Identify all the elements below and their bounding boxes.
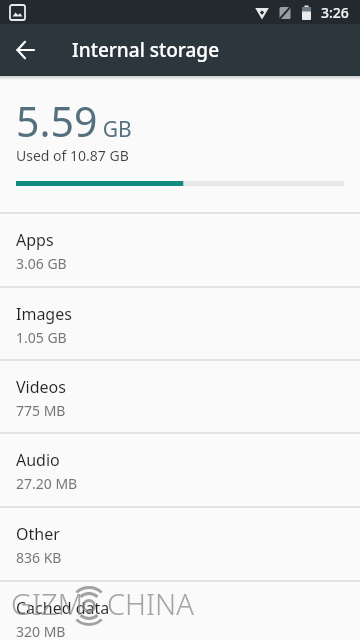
staticText: 27.20 MB (16, 474, 78, 493)
staticText: GIZM (11, 584, 83, 623)
staticText: Apps (16, 229, 54, 251)
staticText: Audio (16, 449, 60, 471)
button[interactable] (0, 24, 52, 76)
button[interactable]: Videos (0, 359, 360, 432)
staticText: Cached data (16, 597, 110, 619)
staticText: Used of 10.87 GB (16, 146, 129, 165)
staticText: 836 KB (16, 548, 62, 567)
button[interactable]: Other (0, 506, 360, 580)
button[interactable]: Apps (0, 212, 360, 286)
staticText: Other (16, 523, 60, 545)
staticText: Videos (16, 376, 66, 398)
staticText: 775 MB (16, 401, 66, 420)
staticText: 5.59 GB (16, 93, 132, 149)
button[interactable]: Audio (0, 432, 360, 506)
staticText: Images (16, 303, 72, 325)
staticText: 1.05 GB (16, 328, 67, 347)
button[interactable]: Cached data (0, 580, 360, 640)
staticText: Internal storage (72, 37, 220, 63)
staticText: 3.06 GB (16, 254, 67, 273)
staticText: 3:26 (321, 3, 349, 22)
staticText: 320 MB (16, 622, 66, 640)
staticText: CHINA (107, 584, 194, 623)
button[interactable]: Images (0, 286, 360, 359)
